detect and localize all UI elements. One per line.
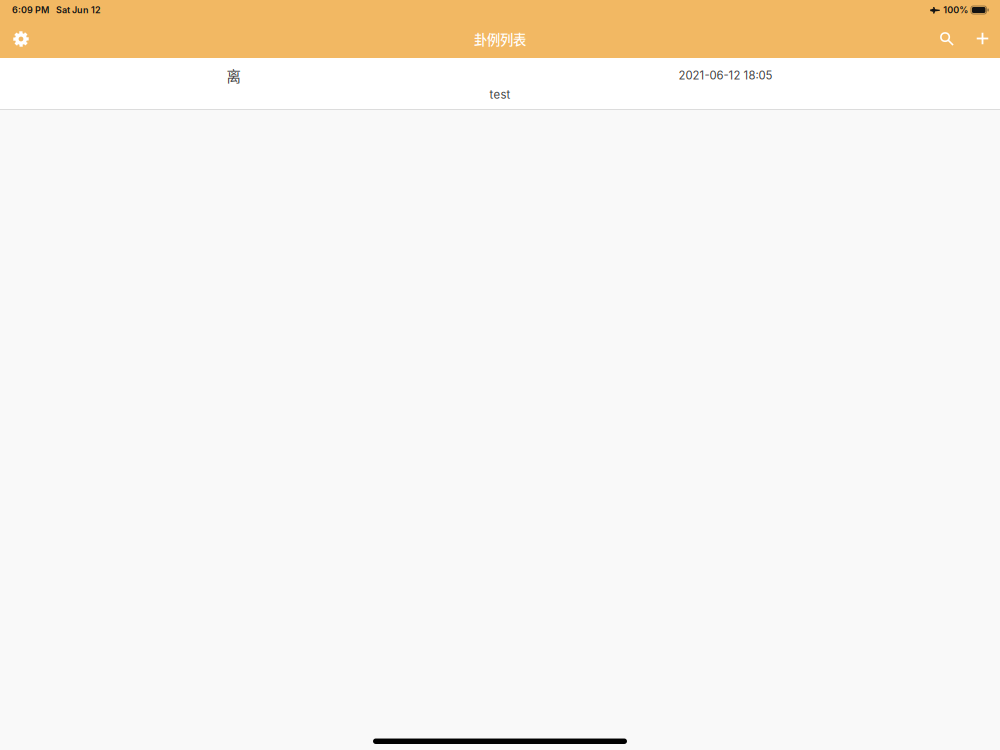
staticText: Sat Jun 12 — [56, 5, 101, 15]
staticText: 2021-06-12 18:05 — [678, 69, 772, 82]
staticText: 100% — [943, 4, 968, 15]
staticText: test — [489, 88, 510, 102]
button[interactable]: Add — [966, 19, 999, 58]
button[interactable]: 离 — [0, 58, 1000, 109]
staticText: 6:09 PM — [12, 4, 49, 15]
button[interactable]: Settings — [0, 20, 42, 58]
staticText: 离 — [226, 65, 240, 86]
staticText: 卦例列表 — [474, 29, 526, 49]
button[interactable]: Search — [927, 19, 966, 58]
